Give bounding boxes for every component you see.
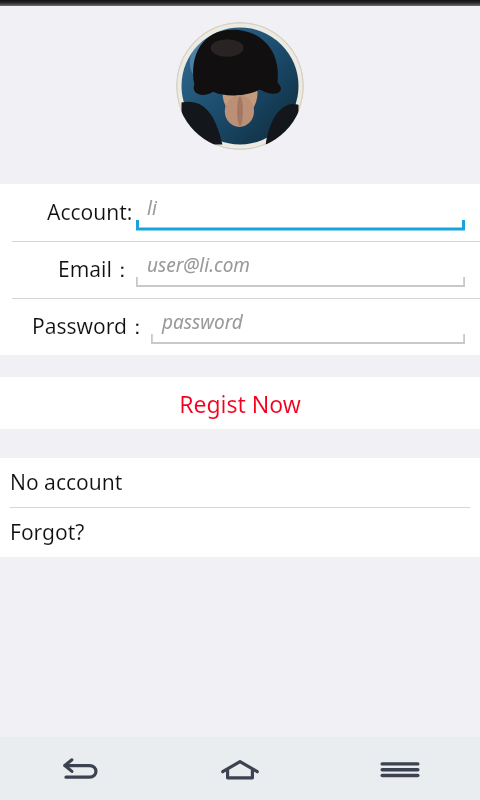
staticText: Password： (32, 312, 148, 341)
staticText: Forgot? (10, 518, 85, 547)
staticText: password (162, 309, 243, 335)
button[interactable]: Forgot? (0, 508, 480, 557)
staticText: Account: (47, 198, 133, 227)
staticText: user@li.com (147, 252, 250, 278)
button[interactable]: Password： (0, 298, 480, 355)
button[interactable]: Profile photo (176, 22, 304, 150)
staticText: Email： (58, 255, 133, 284)
staticText: li (147, 195, 157, 221)
staticText: No account (10, 468, 123, 497)
button[interactable]: Email： (0, 241, 480, 298)
button[interactable]: Back (0, 737, 160, 800)
button[interactable]: Recents (320, 737, 480, 800)
staticText: Regist Now (179, 388, 301, 419)
button[interactable]: Regist Now (0, 377, 480, 429)
button[interactable]: Home (160, 737, 320, 800)
button[interactable]: Account: (0, 184, 480, 241)
button[interactable]: No account (0, 458, 480, 507)
